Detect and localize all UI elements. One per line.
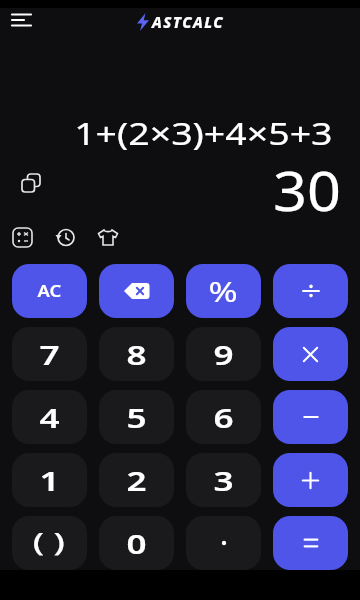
button[interactable]: ( )	[12, 516, 87, 570]
button[interactable]: 5	[99, 390, 174, 444]
staticText: 5	[127, 399, 147, 436]
staticText: 6	[214, 399, 234, 436]
staticText: 4	[40, 399, 60, 436]
button[interactable]: 9	[186, 327, 261, 381]
staticText: 8	[127, 336, 147, 373]
staticText: AC	[37, 280, 62, 302]
button[interactable]	[273, 327, 348, 381]
button[interactable]: 8	[99, 327, 174, 381]
button[interactable]: 4	[12, 390, 87, 444]
staticText: 2	[127, 462, 147, 499]
button[interactable]	[12, 227, 33, 248]
button[interactable]	[97, 227, 119, 248]
staticText: 7	[40, 336, 60, 373]
button[interactable]	[21, 173, 42, 194]
button[interactable]: 3	[186, 453, 261, 507]
staticText: 30	[273, 153, 341, 227]
button[interactable]: 0	[99, 516, 174, 570]
button[interactable]	[99, 264, 174, 318]
staticText: ( )	[33, 524, 66, 558]
staticText: 1	[40, 462, 60, 499]
staticText: 1+(2×3)+4×5+3	[74, 113, 333, 154]
staticText: 3	[214, 462, 234, 499]
button[interactable]	[6, 7, 50, 33]
staticText: 0	[127, 525, 147, 562]
button[interactable]: 2	[99, 453, 174, 507]
button[interactable]: 1	[12, 453, 87, 507]
button[interactable]: %	[186, 264, 261, 318]
button[interactable]	[186, 516, 261, 570]
button[interactable]	[273, 390, 348, 444]
button[interactable]	[273, 453, 348, 507]
button[interactable]	[55, 227, 76, 248]
button[interactable]: 6	[186, 390, 261, 444]
button[interactable]: 7	[12, 327, 87, 381]
staticText: 9	[214, 336, 234, 373]
staticText: %	[209, 273, 238, 310]
staticText: ASTCALC	[152, 12, 225, 32]
button[interactable]	[273, 264, 348, 318]
button[interactable]: AC	[12, 264, 87, 318]
button[interactable]	[273, 516, 348, 570]
